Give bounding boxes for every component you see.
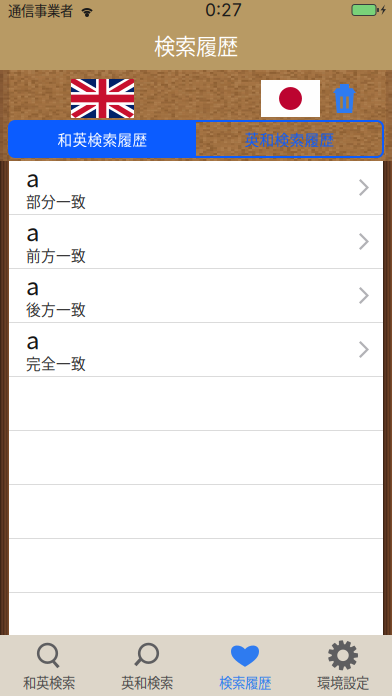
- staticText: 完全一致: [26, 352, 86, 373]
- button[interactable]: a: [9, 269, 383, 323]
- button[interactable]: 環境設定: [294, 635, 392, 696]
- button[interactable]: 英和検索: [98, 635, 196, 696]
- staticText: 和英検索履歴: [57, 128, 147, 150]
- staticText: 後方一致: [26, 298, 86, 319]
- staticText: a: [26, 159, 40, 194]
- button[interactable]: a: [9, 161, 383, 215]
- staticText: a: [26, 213, 40, 248]
- staticText: a: [26, 321, 40, 356]
- staticText: 和英検索: [23, 672, 75, 692]
- staticText: 英和検索履歴: [244, 128, 334, 150]
- staticText: 0:27: [205, 0, 242, 20]
- button[interactable]: a: [9, 215, 383, 269]
- staticText: 通信事業者: [8, 0, 73, 20]
- staticText: 部分一致: [26, 190, 86, 211]
- staticText: a: [26, 267, 40, 302]
- staticText: 環境設定: [317, 672, 369, 692]
- button[interactable]: a: [9, 323, 383, 377]
- button[interactable]: 和英検索履歴: [9, 121, 196, 157]
- staticText: 検索履歴: [154, 30, 238, 60]
- staticText: 前方一致: [26, 244, 86, 265]
- button[interactable]: 和英検索: [0, 635, 98, 696]
- button[interactable]: 英和検索履歴: [196, 121, 383, 157]
- staticText: 英和検索: [121, 672, 173, 692]
- button[interactable]: 検索履歴: [196, 635, 294, 696]
- staticText: 検索履歴: [219, 672, 271, 692]
